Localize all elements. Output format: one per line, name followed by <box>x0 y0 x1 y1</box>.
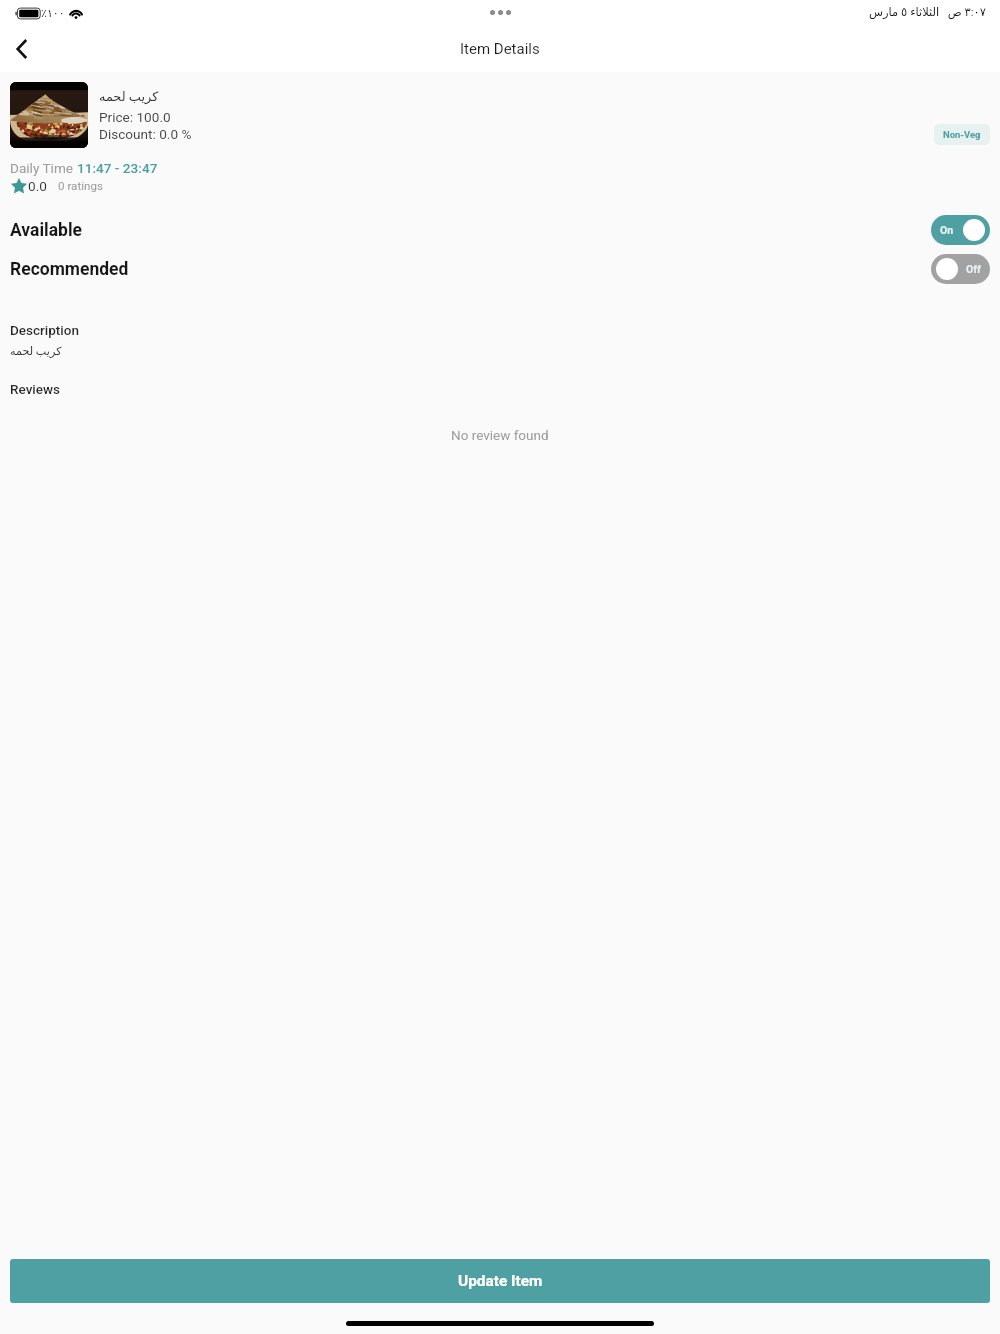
staticText: ٪١٠٠ <box>41 7 65 20</box>
staticText: 11:47 - 23:47 <box>77 160 158 176</box>
staticText: ٣:٠٧ ص الثلاثاء ٥ مارس <box>869 5 986 18</box>
staticText: Item Details <box>460 40 540 58</box>
staticText: Daily Time <box>10 160 77 176</box>
staticText: Off <box>966 263 981 275</box>
staticText: Discount: 0.0 % <box>99 126 192 142</box>
staticText: On <box>940 224 954 236</box>
staticText: 0.0 <box>28 178 47 194</box>
button[interactable]: Available <box>10 215 990 245</box>
staticText: Available <box>10 220 82 241</box>
button[interactable]: Update Item <box>10 1259 990 1303</box>
button[interactable]: Off <box>931 254 990 284</box>
staticText: Non-Veg <box>943 129 981 140</box>
button[interactable]: Back <box>0 27 44 71</box>
staticText: كريب لحمه <box>99 89 159 104</box>
button[interactable]: On <box>931 215 990 245</box>
staticText: Description <box>10 322 79 338</box>
staticText: No review found <box>451 427 549 443</box>
staticText: 0 ratings <box>58 179 103 193</box>
staticText: Reviews <box>10 381 60 397</box>
staticText: كريب لحمه <box>10 345 62 358</box>
staticText: Price: 100.0 <box>99 109 171 125</box>
staticText: Update Item <box>458 1272 543 1290</box>
button[interactable]: Recommended <box>10 254 990 284</box>
staticText: Recommended <box>10 259 129 280</box>
